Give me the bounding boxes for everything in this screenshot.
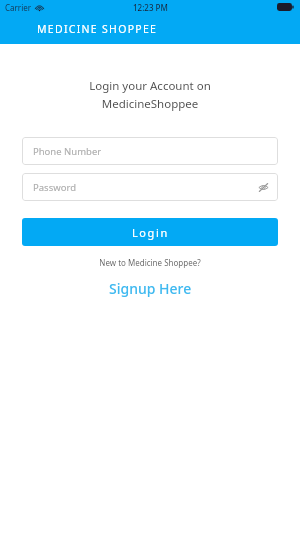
staticText: Phone Number — [33, 145, 102, 158]
button[interactable]: Show password — [256, 180, 270, 194]
button[interactable]: Login — [22, 218, 278, 246]
staticText: 12:23 PM — [133, 2, 168, 13]
button[interactable]: Password — [22, 173, 278, 201]
staticText: Carrier — [5, 2, 32, 13]
staticText: MedicineShoppee — [0, 96, 300, 112]
button[interactable]: Signup Here — [103, 277, 198, 300]
staticText: Password — [33, 181, 76, 194]
staticText: Login your Account on — [0, 78, 300, 94]
staticText: Login — [132, 225, 169, 240]
staticText: New to Medicine Shoppee? — [0, 257, 300, 268]
staticText: Signup Here — [109, 279, 192, 298]
button[interactable]: Phone Number — [22, 137, 278, 165]
staticText: MEDICINE SHOPPEE — [37, 22, 158, 36]
